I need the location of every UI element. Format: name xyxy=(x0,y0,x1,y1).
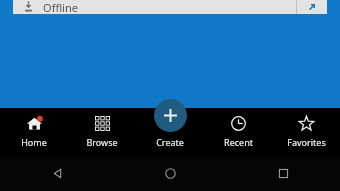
button[interactable]: Create xyxy=(154,99,187,132)
button[interactable]: Home xyxy=(114,155,227,191)
staticText: Create xyxy=(156,136,184,148)
staticText: Favorites xyxy=(287,136,326,148)
button[interactable]: Browse xyxy=(68,108,136,155)
button[interactable]: Expand xyxy=(297,0,327,14)
button[interactable]: Favorites xyxy=(272,108,340,155)
staticText: Offline xyxy=(43,0,78,14)
button[interactable]: Recent xyxy=(204,108,272,155)
button[interactable]: Back xyxy=(0,155,114,191)
button[interactable]: Offline xyxy=(13,0,327,14)
button[interactable]: Recents xyxy=(227,155,340,191)
staticText: Browse xyxy=(86,136,118,148)
button[interactable]: Home xyxy=(0,108,68,155)
staticText: Home xyxy=(21,136,47,148)
staticText: Recent xyxy=(224,136,253,148)
